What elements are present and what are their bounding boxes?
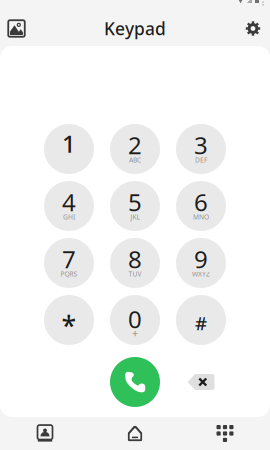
staticText: 2 <box>128 129 142 161</box>
staticText: JKL <box>130 213 139 221</box>
button[interactable]: Gallery <box>0 11 33 45</box>
staticText: MNO <box>193 213 209 221</box>
staticText: 0 <box>128 303 142 335</box>
staticText: 3 <box>194 129 208 161</box>
button[interactable]: * <box>44 295 94 345</box>
button[interactable]: 7 <box>44 238 94 288</box>
button[interactable]: 4 <box>44 181 94 231</box>
button[interactable]: 0 <box>110 295 160 345</box>
button[interactable]: 6 <box>176 181 226 231</box>
staticText: PQRS <box>60 270 77 278</box>
button[interactable]: 1 <box>44 124 94 174</box>
button[interactable]: Delete <box>176 357 226 407</box>
staticText: 4 <box>62 186 76 218</box>
staticText: 6 <box>194 186 208 218</box>
staticText: Keypad <box>104 17 166 40</box>
button[interactable]: Contacts <box>0 417 90 450</box>
button[interactable]: # <box>176 295 226 345</box>
staticText: + <box>132 326 138 340</box>
button[interactable]: 5 <box>110 181 160 231</box>
staticText: WXYZ <box>192 270 210 278</box>
staticText: 1 <box>62 128 76 159</box>
staticText: 5 <box>128 186 142 218</box>
staticText: 7 <box>62 243 76 275</box>
button[interactable]: 9 <box>176 238 226 288</box>
button[interactable]: Settings <box>236 11 270 45</box>
button[interactable]: Keypad <box>180 417 270 450</box>
button[interactable]: 8 <box>110 238 160 288</box>
staticText: * <box>61 308 76 343</box>
button[interactable]: 2 <box>110 124 160 174</box>
staticText: TUV <box>128 270 141 278</box>
staticText: DEF <box>195 156 207 164</box>
staticText: ABC <box>129 156 141 164</box>
button[interactable]: Call <box>110 357 160 407</box>
button[interactable]: Home <box>90 417 180 450</box>
staticText: 8 <box>128 243 142 275</box>
button[interactable]: 3 <box>176 124 226 174</box>
staticText: 9 <box>194 243 208 275</box>
staticText: GHI <box>63 213 75 221</box>
staticText: # <box>195 311 207 335</box>
